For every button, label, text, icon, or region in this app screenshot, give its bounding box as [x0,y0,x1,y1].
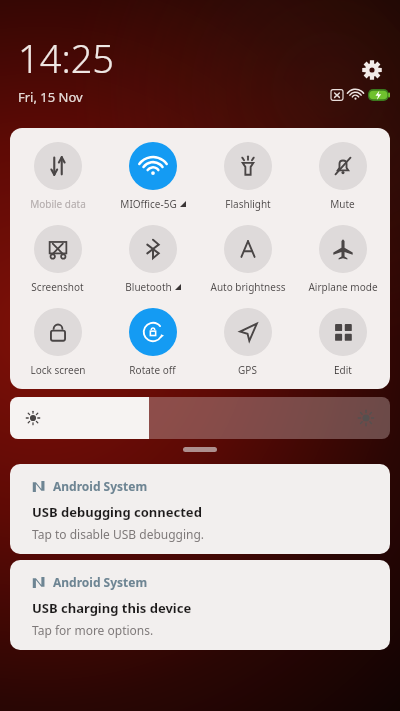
staticText: Android System [53,478,148,494]
staticText: Tap to disable USB debugging. [32,526,205,542]
button[interactable]: Auto brightness [200,223,295,296]
staticText: USB debugging connected [32,503,202,521]
staticText: Rotate off [129,363,176,377]
button[interactable]: Android System [10,560,390,650]
staticText: Fri, 15 Nov [18,88,83,106]
staticText: GPS [238,363,257,377]
button[interactable]: Airplane mode [295,223,390,296]
staticText: Auto brightness [210,280,286,294]
staticText: Screenshot [31,280,84,294]
staticText: Flashlight [225,197,271,211]
button[interactable]: MIOffice-5G [105,140,200,213]
button[interactable]: Rotate off [105,306,200,379]
button[interactable]: Mute [295,140,390,213]
staticText: Mobile data [30,197,86,211]
staticText: Lock screen [30,363,86,377]
button[interactable]: Bluetooth [105,223,200,296]
button[interactable]: Settings [358,56,386,84]
button[interactable]: Lock screen [10,306,105,379]
button[interactable]: Flashlight [200,140,295,213]
button[interactable]: Brightness [10,397,390,439]
staticText: Airplane mode [308,280,378,294]
button[interactable]: Edit [295,306,390,379]
staticText: MIOffice-5G [120,197,177,211]
button[interactable]: Mobile data [10,140,105,213]
button[interactable]: Android System [10,464,390,554]
button[interactable]: GPS [200,306,295,379]
staticText: Tap for more options. [32,622,154,638]
staticText: Mute [330,197,355,211]
button[interactable]: Screenshot [10,223,105,296]
staticText: Edit [334,363,352,377]
staticText: Bluetooth [125,280,172,294]
staticText: USB charging this device [32,599,192,617]
staticText: 14:25 [18,32,115,84]
staticText: Android System [53,574,148,590]
